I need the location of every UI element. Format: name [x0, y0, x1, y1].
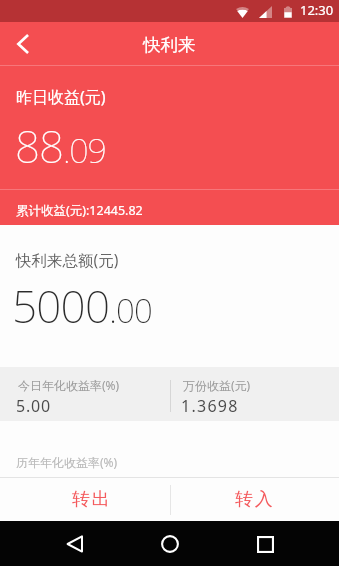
button[interactable]: Back	[1, 22, 45, 65]
staticText: 历年年化收益率(%)	[16, 454, 118, 470]
button[interactable]: Back	[52, 522, 96, 566]
staticText: 12:30	[300, 1, 334, 19]
staticText: 1.3698	[181, 395, 239, 417]
staticText: 累计收益(元):12445.82	[16, 202, 143, 219]
staticText: 快利来总额(元)	[16, 249, 119, 270]
button[interactable]: Recent apps	[243, 522, 287, 566]
staticText: 今日年化收益率(%)	[18, 377, 120, 393]
staticText: 转入	[235, 488, 275, 511]
staticText: 88.09	[15, 116, 106, 176]
staticText: 5.00	[16, 395, 51, 417]
button[interactable]: Home	[148, 522, 192, 566]
button[interactable]: 转入	[171, 478, 339, 521]
button[interactable]: 转出	[0, 478, 170, 521]
staticText: 快利来	[143, 34, 196, 56]
staticText: 万份收益(元)	[183, 377, 251, 393]
staticText: 转出	[72, 488, 112, 511]
staticText: 5000.00	[12, 276, 153, 336]
staticText: 昨日收益(元)	[16, 86, 106, 108]
